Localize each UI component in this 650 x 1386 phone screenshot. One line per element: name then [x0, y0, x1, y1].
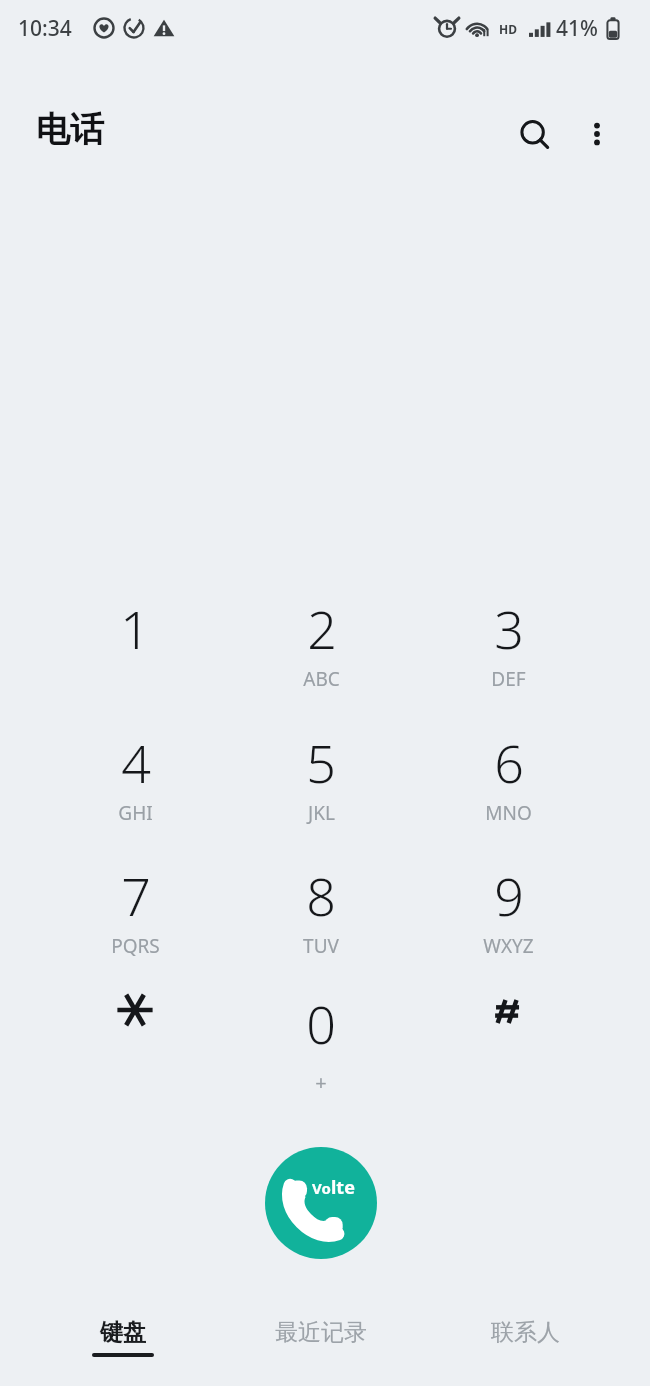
staticText: JKL: [308, 800, 335, 826]
staticText: 4: [121, 727, 151, 798]
staticText: 键盘: [100, 1318, 146, 1347]
staticText: 10:34: [18, 14, 72, 43]
button[interactable]: 9: [426, 846, 590, 970]
button[interactable]: [426, 974, 590, 1098]
button[interactable]: Search: [505, 105, 565, 165]
button[interactable]: Call: [265, 1147, 377, 1259]
button[interactable]: 2: [239, 579, 403, 703]
staticText: 6: [494, 727, 524, 798]
staticText: WXYZ: [483, 933, 534, 959]
staticText: 最近记录: [275, 1318, 367, 1347]
button[interactable]: [53, 974, 217, 1098]
staticText: MNO: [485, 800, 532, 826]
staticText: 电话: [36, 108, 104, 151]
staticText: DEF: [491, 666, 526, 692]
staticText: 8: [306, 860, 336, 931]
staticText: 2: [307, 593, 337, 664]
staticText: ABC: [303, 666, 340, 692]
button[interactable]: 3: [426, 579, 590, 703]
button[interactable]: 4: [53, 713, 217, 837]
button[interactable]: More options: [568, 105, 626, 163]
button[interactable]: 7: [53, 846, 217, 970]
staticText: HD: [499, 21, 517, 37]
button[interactable]: 0: [239, 974, 403, 1098]
staticText: 5: [306, 727, 336, 798]
staticText: 3: [494, 593, 524, 664]
staticText: +: [315, 1069, 327, 1096]
staticText: lte: [331, 1175, 355, 1200]
button[interactable]: 键盘: [30, 1318, 216, 1382]
button[interactable]: 1: [53, 579, 217, 703]
staticText: 7: [121, 860, 151, 931]
button[interactable]: 6: [426, 713, 590, 837]
button[interactable]: 8: [239, 846, 403, 970]
staticText: TUV: [303, 933, 339, 959]
staticText: GHI: [118, 800, 153, 826]
button[interactable]: 联系人: [432, 1318, 618, 1382]
staticText: 1: [120, 593, 150, 664]
button[interactable]: 5: [239, 713, 403, 837]
button[interactable]: 最近记录: [228, 1318, 414, 1382]
staticText: PQRS: [111, 933, 160, 959]
staticText: 联系人: [491, 1318, 560, 1347]
staticText: 41%: [556, 14, 598, 43]
staticText: 9: [494, 860, 524, 931]
staticText: 0: [306, 988, 336, 1059]
staticText: Vo: [312, 1178, 331, 1198]
